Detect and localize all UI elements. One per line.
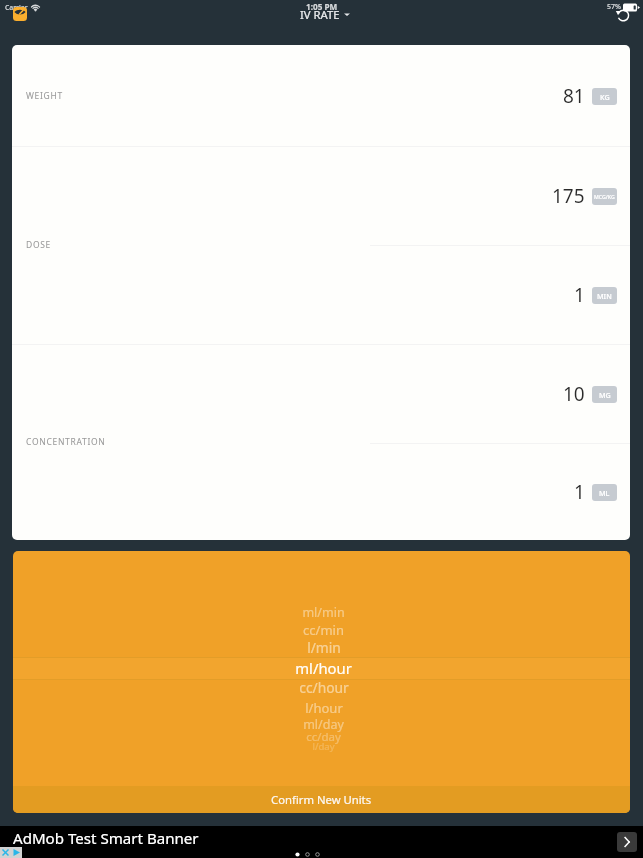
staticText: ml/day (303, 716, 344, 733)
staticText: KG (600, 92, 610, 102)
staticText: 1:05 PM (306, 1, 338, 12)
staticText: cc/hour (299, 678, 349, 697)
staticText: l/hour (305, 699, 343, 717)
button[interactable]: Reset (615, 7, 630, 22)
staticText: l/day (312, 740, 335, 753)
staticText: AdMob Test Smart Banner (13, 828, 199, 849)
button[interactable]: 175 (12, 147, 630, 245)
staticText: 10 (563, 381, 585, 407)
button[interactable]: KG (592, 88, 617, 105)
button[interactable]: 1 (12, 246, 630, 344)
button[interactable]: cc/hour (15, 676, 630, 699)
staticText: Carrier (5, 3, 28, 12)
button[interactable]: l/hour (15, 697, 630, 719)
staticText: CONCENTRATION (26, 436, 106, 448)
staticText: cc/min (303, 621, 344, 639)
staticText: MIN (597, 291, 612, 301)
button[interactable]: Ad choices (0, 847, 22, 858)
button[interactable]: MG (592, 386, 617, 403)
staticText: 1 (574, 282, 585, 308)
staticText: ml/hour (295, 658, 352, 678)
button[interactable]: MIN (592, 287, 617, 304)
staticText: MG (599, 390, 611, 400)
staticText: ml/min (302, 604, 345, 621)
button[interactable]: Next ad (617, 832, 637, 852)
staticText: 57% (607, 2, 621, 12)
button[interactable]: ML (592, 484, 617, 501)
button[interactable]: cc/day (15, 727, 630, 747)
button[interactable]: ml/hour (15, 655, 630, 680)
button[interactable]: cc/min (15, 619, 630, 641)
staticText: 1 (574, 479, 585, 505)
button[interactable]: l/min (15, 636, 630, 659)
button[interactable]: 10 (12, 345, 630, 443)
staticText: cc/day (306, 729, 341, 745)
button[interactable]: WEIGHT (12, 45, 630, 146)
button[interactable]: IV RATE (300, 7, 350, 22)
staticText: 81 (563, 83, 585, 109)
staticText: WEIGHT (26, 90, 63, 102)
button[interactable]: MCG/KG (592, 188, 617, 205)
staticText: l/min (307, 638, 341, 657)
staticText: 175 (552, 183, 585, 209)
button[interactable]: 1 (12, 444, 630, 540)
staticText: DOSE (26, 239, 52, 251)
button[interactable]: ml/min (15, 602, 630, 623)
button[interactable]: Weight scale (13, 7, 27, 21)
staticText: MCG/KG (594, 193, 615, 200)
staticText: IV RATE (300, 7, 340, 22)
staticText: Confirm New Units (271, 792, 372, 807)
staticText: ML (599, 488, 610, 498)
button[interactable]: Confirm New Units (13, 786, 630, 813)
button[interactable]: ml/day (15, 714, 630, 735)
button[interactable]: l/day (15, 738, 630, 754)
